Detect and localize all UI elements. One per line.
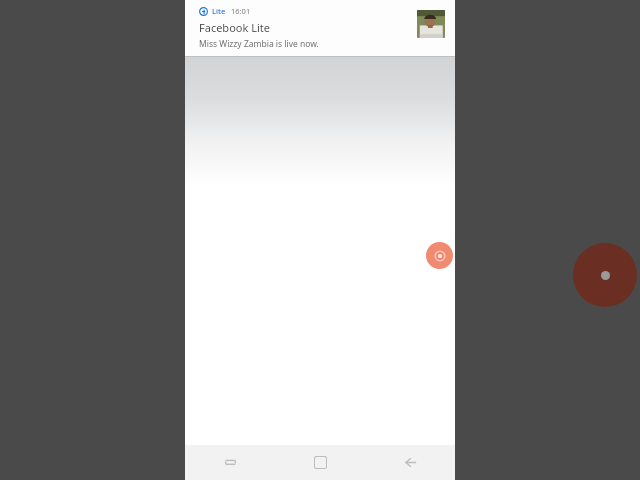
button[interactable]: Home <box>275 445 365 480</box>
button[interactable]: Back <box>365 445 455 480</box>
button[interactable]: Recents <box>185 445 275 480</box>
staticText: Lite <box>212 6 226 16</box>
staticText: 16:01 <box>231 6 251 16</box>
button[interactable]: Compose <box>426 242 453 269</box>
staticText: Facebook Lite <box>199 20 270 35</box>
button[interactable]: Lite <box>185 0 455 57</box>
staticText: Miss Wizzy Zambia is live now. <box>199 38 319 50</box>
